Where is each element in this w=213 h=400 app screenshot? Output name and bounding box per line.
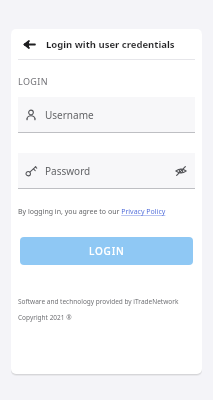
staticText: Password [45, 164, 91, 178]
staticText: LOGIN [18, 75, 49, 87]
staticText: LOGIN [89, 244, 125, 258]
staticText: Copyright 2021 ® [18, 313, 72, 322]
button[interactable]: Show password [173, 163, 189, 179]
button[interactable]: Back [18, 33, 40, 55]
staticText: Software and technology provided by iTra… [18, 297, 179, 306]
button[interactable]: LOGIN [20, 237, 193, 265]
staticText: By logging in, you agree to our Privacy … [18, 207, 166, 217]
button[interactable]: Username [18, 97, 195, 133]
button[interactable]: Password [18, 153, 195, 189]
staticText: Login with user credentials [46, 38, 175, 51]
staticText: Username [45, 108, 94, 122]
